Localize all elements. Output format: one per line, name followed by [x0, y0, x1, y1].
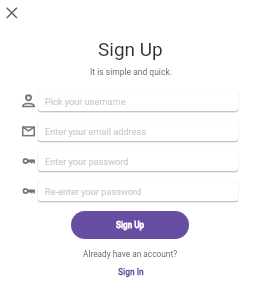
staticText: Sign Up — [116, 220, 145, 230]
staticText: Sign Up — [98, 38, 163, 60]
staticText: Pick your username — [45, 96, 126, 107]
staticText: Re-enter your password — [45, 186, 142, 197]
button[interactable]: Close — [0, 0, 24, 24]
button[interactable]: Sign Up — [71, 211, 189, 239]
button[interactable]: Enter your password — [38, 151, 238, 171]
button[interactable]: Re-enter your password — [38, 181, 238, 201]
staticText: It is simple and quick. — [90, 67, 172, 77]
staticText: Already have an account? — [83, 249, 178, 259]
staticText: Sign In — [118, 267, 144, 277]
button[interactable]: Enter your email address — [38, 121, 238, 141]
button[interactable]: Sign In — [112, 264, 150, 280]
staticText: Enter your email address — [45, 126, 146, 137]
button[interactable]: Pick your username — [38, 91, 238, 111]
staticText: Enter your password — [45, 156, 129, 167]
